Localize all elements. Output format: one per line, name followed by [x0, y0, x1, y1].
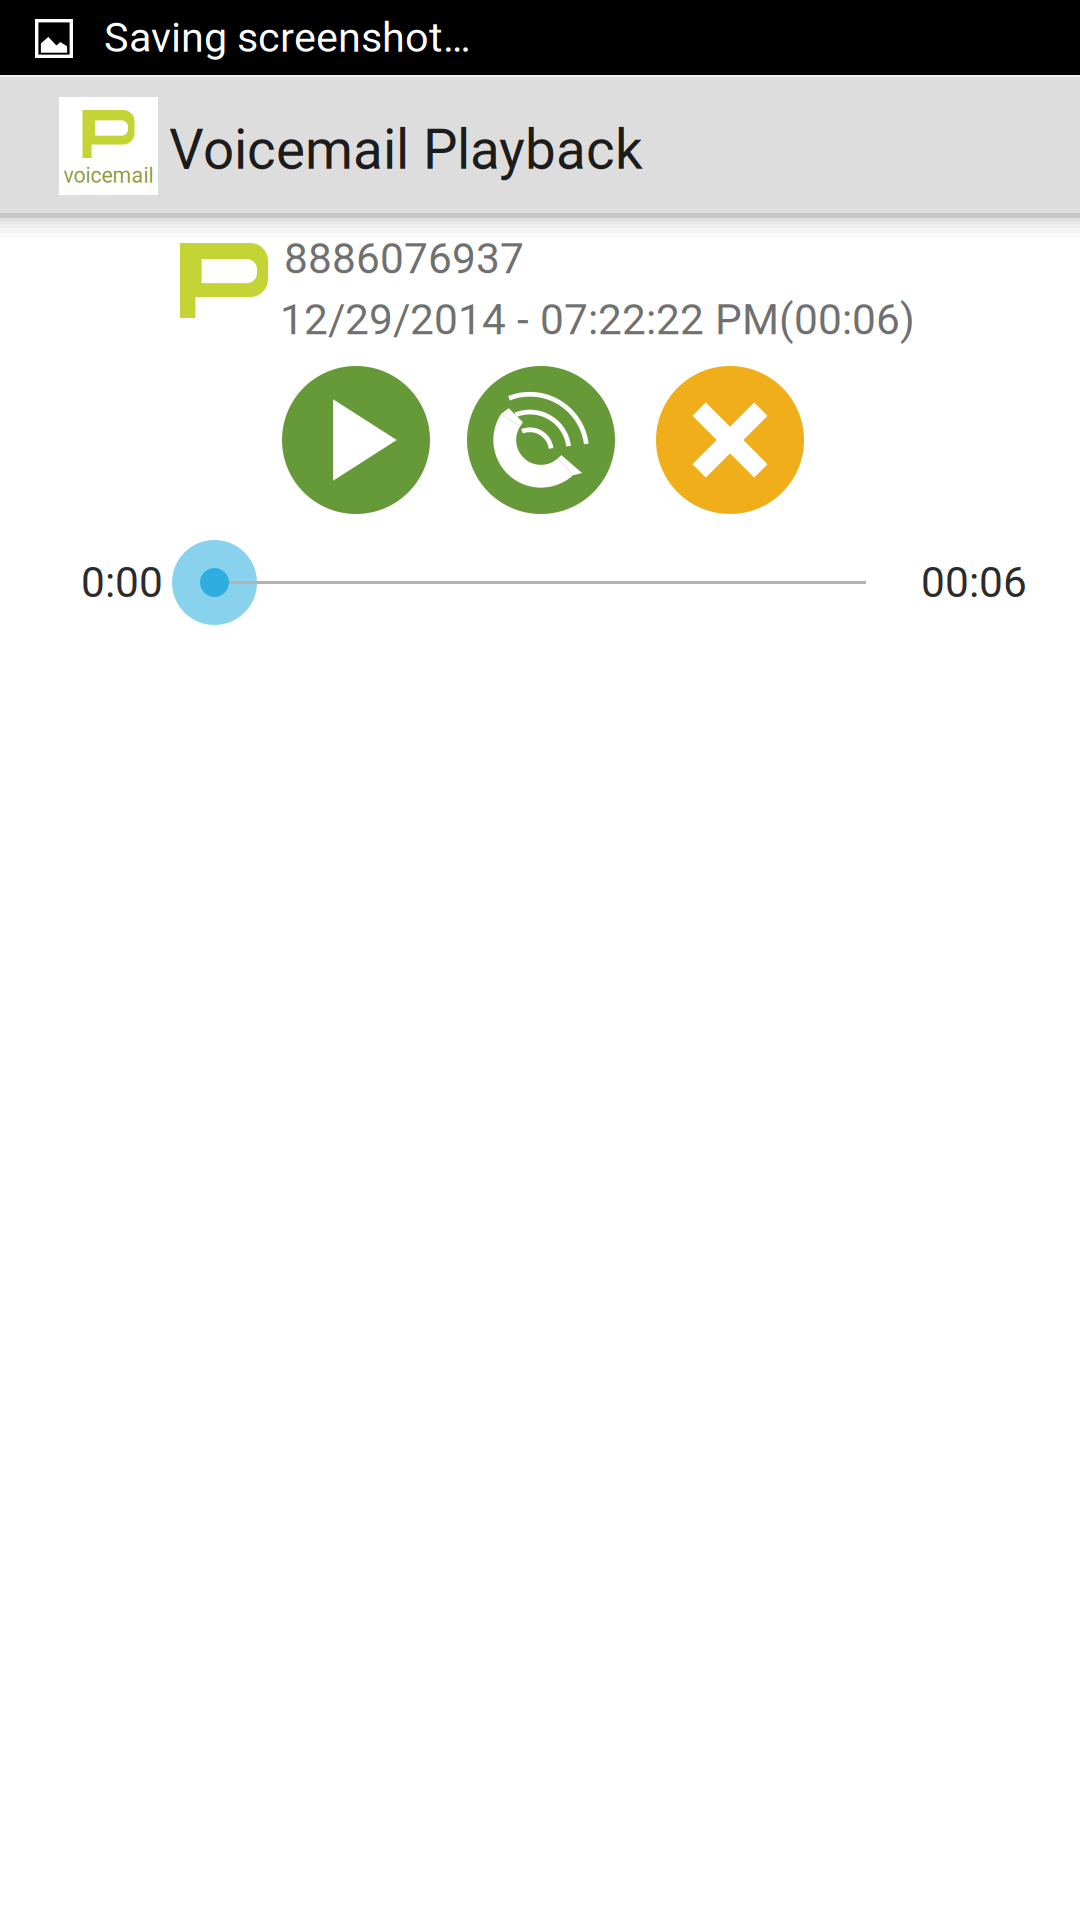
- button[interactable]: Voicemail from 8886076937: [0, 243, 1080, 348]
- staticText: Saving screenshot…: [104, 13, 471, 62]
- button[interactable]: Call back: [467, 366, 615, 514]
- staticText: Voicemail Playback: [169, 118, 643, 182]
- button[interactable]: Playback position: [0, 540, 1080, 625]
- button[interactable]: Play: [282, 366, 430, 514]
- button[interactable]: Delete: [656, 366, 804, 514]
- staticText: 8886076937: [284, 234, 524, 284]
- staticText: 12/29/2014 - 07:22:22 PM(00:06): [280, 295, 915, 345]
- staticText: 00:06: [921, 558, 1027, 607]
- staticText: voicemail: [63, 163, 153, 188]
- staticText: 0:00: [81, 558, 163, 607]
